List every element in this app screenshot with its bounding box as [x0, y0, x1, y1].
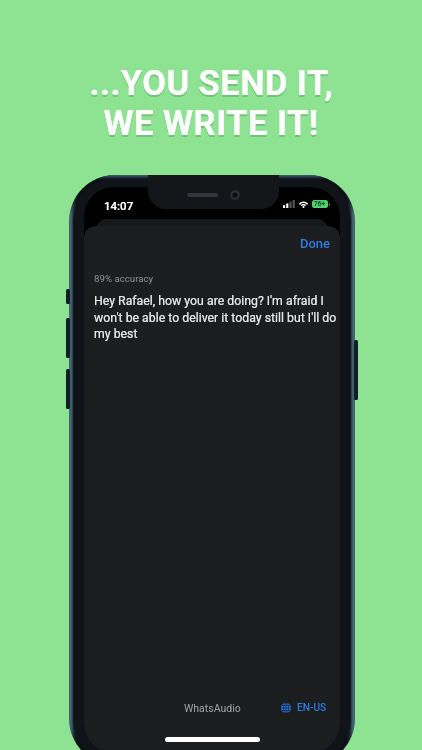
button[interactable]: Change language	[279, 700, 329, 716]
staticText: ...YOU SEND IT,	[89, 65, 334, 105]
staticText: 76+	[314, 200, 326, 208]
staticText: 14:07	[104, 199, 134, 212]
button[interactable]: Done	[282, 226, 340, 259]
staticText: EN-US	[297, 702, 327, 714]
staticText: Done	[300, 236, 331, 251]
staticText: Hey Rafael, how you are doing? I'm afrai…	[94, 294, 339, 341]
staticText: WE WRITE IT!	[103, 103, 319, 143]
staticText: WE WRITE IT!	[103, 105, 319, 145]
staticText: ...YOU SEND IT,	[89, 63, 334, 103]
staticText: 89% accuracy	[94, 273, 154, 284]
staticText: WhatsAudio	[184, 702, 241, 714]
other: Change language	[281, 703, 291, 713]
